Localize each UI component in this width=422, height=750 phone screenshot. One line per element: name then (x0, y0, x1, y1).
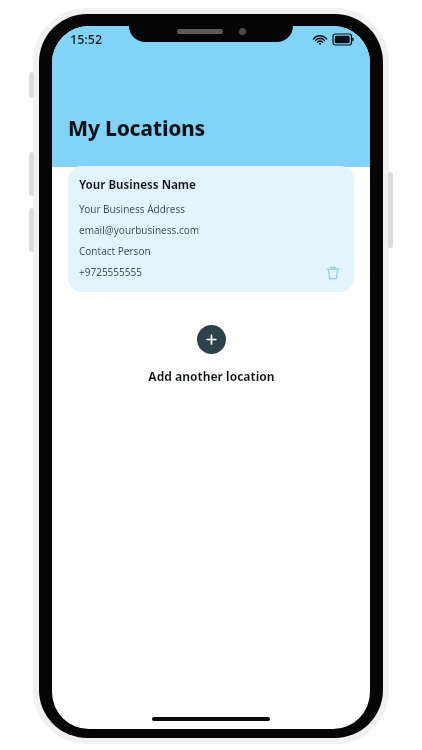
button[interactable]: Delete location (321, 261, 345, 285)
staticText: Contact Person (79, 244, 151, 258)
staticText: 15:52 (70, 31, 103, 48)
staticText: email@yourbusiness.com (79, 223, 200, 237)
button[interactable]: Add another location (197, 325, 226, 354)
staticText: Add another location (148, 368, 275, 384)
button[interactable]: Your Business Name (68, 166, 354, 292)
staticText: Your Business Name (79, 177, 196, 193)
staticText: My Locations (68, 114, 205, 143)
staticText: +9725555555 (79, 265, 142, 279)
staticText: Your Business Address (79, 202, 186, 216)
